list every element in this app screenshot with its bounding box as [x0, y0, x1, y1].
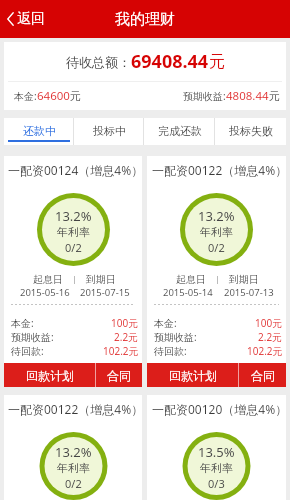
staticText: 预期收益:: [183, 89, 226, 103]
staticText: 待回款:: [11, 344, 44, 358]
button[interactable]: 一配资00122（增息4%）: [4, 395, 142, 500]
button[interactable]: 一配资00124（增息4%）: [4, 156, 142, 387]
staticText: 年利率: [200, 461, 233, 475]
staticText: 还款中: [23, 124, 56, 138]
staticText: 待回款:: [154, 344, 187, 358]
staticText: 元: [269, 89, 280, 103]
staticText: 元: [209, 52, 225, 72]
button[interactable]: 返回: [0, 2, 53, 36]
staticText: 2015-05-14: [163, 286, 213, 299]
staticText: 一配资00120（增息4%）: [152, 401, 288, 417]
staticText: 13.5%: [198, 443, 235, 461]
staticText: 本金:: [11, 316, 34, 330]
button[interactable]: 投标中: [74, 118, 144, 145]
staticText: 0/2: [65, 476, 82, 491]
staticText: 2.2元: [114, 330, 139, 344]
button[interactable]: 完成还款: [144, 118, 215, 145]
staticText: 64600: [37, 88, 70, 104]
button[interactable]: 回款计划: [147, 363, 238, 387]
staticText: 2015-07-13: [224, 286, 274, 299]
button[interactable]: 回款计划: [4, 363, 95, 387]
button[interactable]: 一配资00122（增息4%）: [147, 156, 286, 387]
staticText: 年利率: [200, 225, 233, 239]
staticText: 投标中: [93, 124, 126, 138]
staticText: 回款计划: [26, 368, 74, 383]
staticText: 0/2: [65, 240, 82, 255]
staticText: 年利率: [57, 225, 90, 239]
staticText: 年利率: [57, 461, 90, 475]
staticText: 0/2: [208, 240, 225, 255]
staticText: 一配资00124（增息4%）: [8, 162, 144, 178]
staticText: 一配资00122（增息4%）: [152, 162, 288, 178]
staticText: 100元: [255, 316, 283, 330]
button[interactable]: 合同: [239, 363, 286, 387]
staticText: 2015-05-16: [20, 286, 70, 299]
button[interactable]: 投标失败: [215, 118, 286, 145]
staticText: 69408.44: [131, 49, 209, 74]
staticText: 起息日: [33, 273, 63, 286]
staticText: 预期收益:: [154, 330, 197, 344]
staticText: 返回: [17, 10, 45, 28]
staticText: 回款计划: [169, 368, 217, 383]
staticText: 0/3: [208, 476, 225, 491]
staticText: 到期日: [229, 273, 259, 286]
staticText: 完成还款: [158, 124, 202, 138]
staticText: 102.2元: [103, 344, 139, 358]
button[interactable]: 还款中: [4, 118, 74, 145]
button[interactable]: 一配资00120（增息4%）: [147, 395, 286, 500]
staticText: 合同: [107, 368, 131, 383]
staticText: 本金:: [154, 316, 177, 330]
staticText: 2.2元: [258, 330, 283, 344]
staticText: 2015-07-15: [80, 286, 130, 299]
staticText: 13.2%: [55, 207, 92, 225]
staticText: 本金:: [14, 89, 37, 103]
staticText: 元: [70, 89, 81, 103]
staticText: 100元: [111, 316, 139, 330]
staticText: 4808.44: [226, 88, 269, 104]
staticText: 起息日: [176, 273, 206, 286]
staticText: 投标失败: [229, 124, 273, 138]
staticText: 到期日: [86, 273, 116, 286]
button[interactable]: 合同: [96, 363, 142, 387]
staticText: 一配资00122（增息4%）: [8, 401, 144, 417]
staticText: 预期收益:: [11, 330, 54, 344]
staticText: 我的理财: [115, 10, 175, 29]
staticText: 待收总额：: [66, 54, 131, 70]
staticText: 102.2元: [247, 344, 283, 358]
staticText: 13.2%: [198, 207, 235, 225]
staticText: 合同: [251, 368, 275, 383]
staticText: 13.2%: [55, 443, 92, 461]
